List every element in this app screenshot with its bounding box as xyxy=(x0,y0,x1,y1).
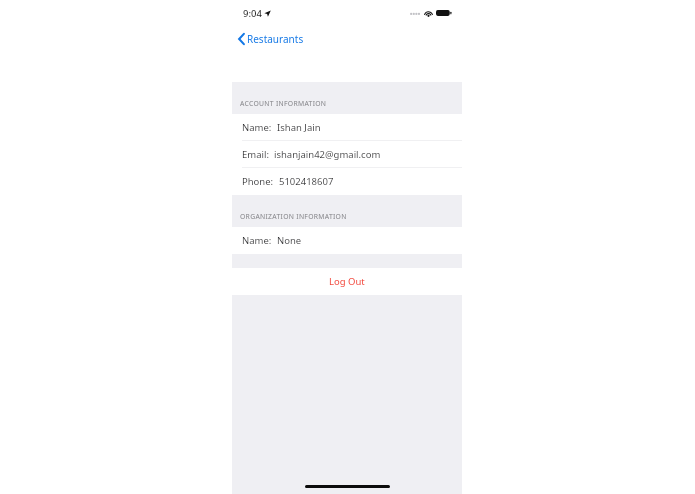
staticText: Phone: xyxy=(242,175,274,188)
staticText: ACCOUNT INFORMATION xyxy=(240,99,327,108)
button[interactable]: Email: xyxy=(232,141,462,168)
button[interactable]: Name: xyxy=(232,114,462,141)
staticText: Restaurants xyxy=(247,32,304,46)
button[interactable]: Back to Restaurants xyxy=(236,29,310,49)
staticText: Email: xyxy=(242,148,269,161)
staticText: Name: xyxy=(242,121,272,134)
staticText: None xyxy=(277,234,302,247)
staticText: ishanjain42@gmail.com xyxy=(274,148,381,161)
staticText: Log Out xyxy=(329,275,365,288)
staticText: 5102418607 xyxy=(279,175,334,188)
staticText: Name: xyxy=(242,234,272,247)
button[interactable]: Log Out xyxy=(232,268,462,295)
button[interactable]: Name: xyxy=(232,227,462,254)
staticText: 9:04 xyxy=(243,7,262,20)
staticText: Ishan Jain xyxy=(277,121,321,134)
button[interactable]: Phone: xyxy=(232,168,462,195)
staticText: ORGANIZATION INFORMATION xyxy=(240,212,347,221)
